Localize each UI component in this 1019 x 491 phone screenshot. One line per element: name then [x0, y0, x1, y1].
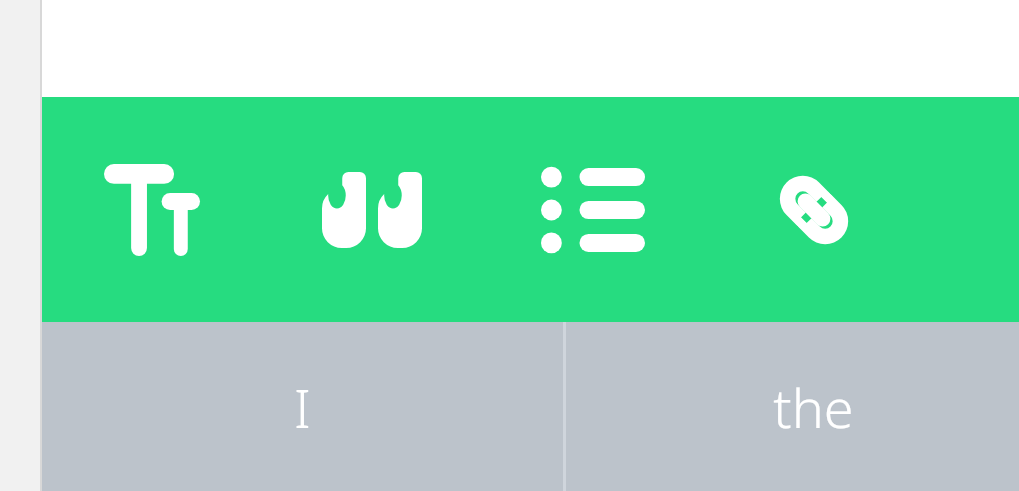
button[interactable]: Text size	[42, 97, 262, 322]
button[interactable]: the	[566, 322, 1019, 491]
button[interactable]: Quote	[262, 97, 482, 322]
staticText: the	[773, 370, 854, 444]
staticText: I	[294, 370, 311, 444]
button[interactable]: Bulleted list	[482, 97, 703, 322]
button[interactable]: Insert link	[703, 97, 924, 322]
